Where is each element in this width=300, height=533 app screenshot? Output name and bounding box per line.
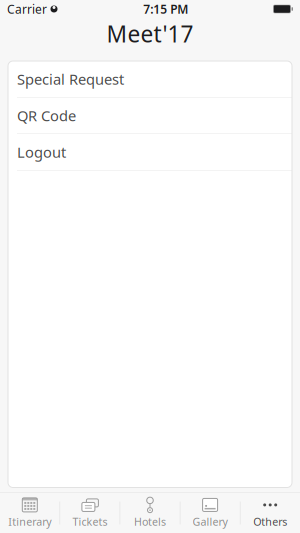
button[interactable]: Special Request — [8, 61, 292, 97]
staticText: Special Request — [17, 69, 124, 89]
button[interactable]: Others — [240, 493, 300, 533]
staticText: 7:15 PM — [143, 1, 188, 17]
staticText: Tickets — [72, 514, 107, 529]
staticText: Meet'17 — [106, 19, 193, 49]
staticText: Hotels — [134, 514, 166, 529]
button[interactable]: Gallery — [180, 493, 240, 533]
staticText: QR Code — [17, 106, 76, 125]
button[interactable]: Tickets — [60, 493, 120, 533]
button[interactable]: QR Code — [8, 97, 292, 134]
staticText: Logout — [17, 142, 66, 162]
button[interactable]: Logout — [8, 134, 292, 170]
staticText: Carrier — [7, 1, 47, 17]
button[interactable]: Itinerary — [0, 493, 60, 533]
staticText: Others — [253, 514, 287, 529]
button[interactable]: Hotels — [120, 493, 180, 533]
staticText: Gallery — [193, 514, 228, 529]
staticText: Itinerary — [8, 514, 51, 529]
